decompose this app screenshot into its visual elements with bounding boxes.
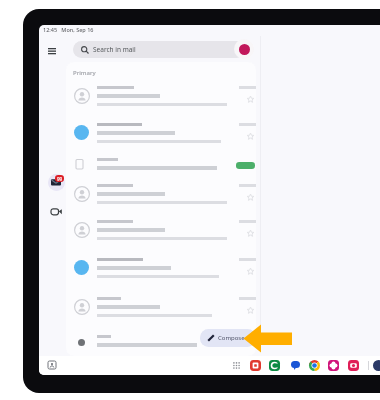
button[interactable]: Chrome xyxy=(309,360,320,371)
button[interactable]: Phone xyxy=(269,360,280,371)
staticText: Compose xyxy=(218,334,245,342)
button[interactable]: Account xyxy=(234,39,254,59)
button[interactable]: Mail xyxy=(47,173,65,191)
button[interactable]: Messages xyxy=(291,361,300,370)
button[interactable] xyxy=(64,157,257,180)
button[interactable]: Show keyboard xyxy=(48,361,56,369)
button[interactable]: Photos xyxy=(328,360,339,371)
staticText: 12:45 Mon, Sep 16 xyxy=(43,26,94,33)
staticText: 99 xyxy=(57,176,63,182)
button[interactable]: Camera xyxy=(348,360,359,371)
button[interactable] xyxy=(64,122,257,155)
button[interactable] xyxy=(64,296,257,329)
button[interactable]: Navigation menu xyxy=(42,41,62,61)
button[interactable]: All apps xyxy=(233,362,240,369)
button[interactable] xyxy=(64,257,257,290)
button[interactable] xyxy=(64,219,257,252)
staticText: Search in mail xyxy=(93,45,136,54)
staticText: Primary xyxy=(73,69,96,77)
button[interactable]: Meet xyxy=(49,204,63,218)
button[interactable]: Compose xyxy=(200,329,256,347)
button[interactable]: Recent app xyxy=(373,360,380,371)
button[interactable] xyxy=(64,85,257,118)
button[interactable] xyxy=(64,334,257,357)
button[interactable] xyxy=(64,183,257,216)
button[interactable]: Slides xyxy=(250,360,261,371)
button[interactable]: Search in mail xyxy=(73,41,245,58)
